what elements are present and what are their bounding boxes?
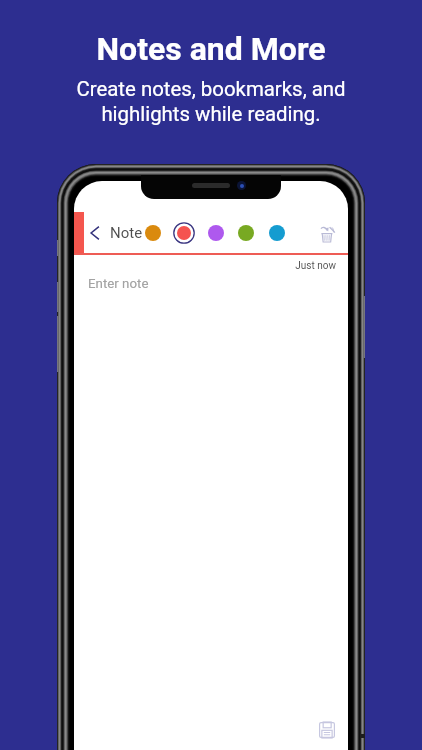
button[interactable]: Save note [315,718,339,742]
button[interactable]: Colour [233,220,259,246]
staticText: Create notes, bookmarks, and highlights … [0,77,422,126]
button[interactable]: Colour [264,220,290,246]
staticText: Notes and More [0,30,422,68]
button[interactable]: Colour [203,220,229,246]
staticText: Note [110,224,143,242]
staticText: Enter note [88,276,149,292]
button[interactable]: Delete note [316,220,340,244]
button[interactable]: Back [85,223,105,243]
staticText: Just now [254,260,336,272]
button[interactable]: Colour [140,220,166,246]
button[interactable]: Colour [171,220,197,246]
